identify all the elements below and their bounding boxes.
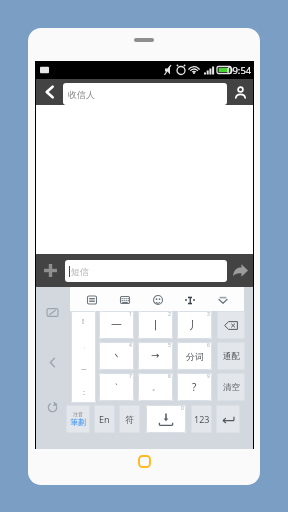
button[interactable]: Undo (38, 395, 67, 419)
staticText: 符 (125, 414, 134, 425)
button[interactable]: Backspace (217, 311, 245, 339)
button[interactable]: 注音 (66, 405, 90, 433)
button[interactable]: 收信人 (63, 83, 227, 105)
staticText: 2 (168, 311, 171, 318)
staticText: 0 (181, 405, 184, 412)
button[interactable]: Pick contact (227, 79, 253, 105)
button[interactable]: 分词 (177, 342, 212, 370)
button[interactable]: Previous (38, 350, 67, 374)
staticText: 注音 (73, 411, 83, 417)
button[interactable]: Send (227, 254, 253, 287)
button[interactable]: Emoji (149, 289, 166, 310)
staticText: → (151, 350, 160, 362)
staticText: ? (192, 380, 197, 394)
button[interactable]: 丶 (99, 342, 134, 370)
button[interactable]: Symbol panel (83, 289, 100, 310)
staticText: En (99, 413, 110, 425)
staticText: 3 (207, 311, 210, 318)
staticText: 丿 (189, 318, 200, 332)
button[interactable]: 123 (191, 405, 212, 433)
button[interactable]: 丨 (138, 311, 173, 339)
staticText: ! (82, 316, 85, 326)
staticText: 。 (152, 382, 160, 392)
staticText: 09:54 (227, 64, 252, 77)
staticText: 通配 (223, 351, 240, 362)
button[interactable]: 一 (99, 311, 134, 339)
staticText: 短信 (71, 266, 89, 277)
button[interactable]: Enter (216, 405, 240, 433)
button[interactable]: ? (177, 373, 212, 401)
button[interactable]: 短信 (65, 260, 227, 282)
button[interactable]: 清空 (217, 373, 245, 401)
button[interactable]: Space (146, 405, 186, 433)
staticText: 丶 (112, 350, 122, 363)
staticText: 9 (207, 373, 210, 380)
staticText: 丨 (150, 318, 161, 332)
staticText: 一 (111, 318, 122, 332)
staticText: 7 (129, 373, 132, 380)
button[interactable]: Back (36, 79, 63, 105)
staticText: : (83, 388, 85, 398)
button[interactable]: Cursor (181, 289, 198, 310)
staticText: 4 (129, 342, 132, 349)
staticText: ˋ (115, 381, 118, 393)
staticText: 收信人 (68, 89, 95, 100)
button[interactable]: Home (134, 451, 154, 471)
staticText: 1 (129, 311, 132, 318)
button[interactable]: Hide keyboard (214, 289, 231, 310)
staticText: — (81, 365, 87, 372)
button[interactable]: Keyboard layout (116, 289, 133, 310)
button[interactable]: → (138, 342, 173, 370)
button[interactable]: Add attachment (36, 254, 65, 287)
button[interactable]: 丿 (177, 311, 212, 339)
staticText: ， (81, 342, 87, 350)
button[interactable]: 符 (119, 405, 140, 433)
button[interactable]: 通配 (217, 342, 245, 370)
button[interactable]: ˋ (99, 373, 134, 401)
staticText: 8 (168, 373, 171, 380)
staticText: 筆劃 (70, 417, 86, 427)
button[interactable]: Resize keyboard (38, 300, 67, 324)
button[interactable]: ! (71, 311, 96, 403)
staticText: 5 (168, 342, 171, 349)
staticText: 清空 (223, 382, 240, 393)
button[interactable]: 。 (138, 373, 173, 401)
staticText: 6 (207, 342, 210, 349)
staticText: 123 (194, 413, 210, 425)
staticText: 分词 (186, 351, 204, 362)
button[interactable]: En (94, 405, 115, 433)
